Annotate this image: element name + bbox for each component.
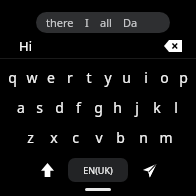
staticText: Da [123, 15, 138, 30]
staticText: w [26, 68, 38, 87]
button[interactable]: s [31, 92, 48, 122]
staticText: m [159, 128, 173, 147]
staticText: n [139, 128, 148, 147]
button[interactable]: q [4, 62, 21, 92]
button[interactable]: t [80, 62, 97, 92]
button[interactable]: e [42, 62, 59, 92]
staticText: Hi [19, 37, 32, 55]
staticText: u [122, 68, 131, 87]
staticText: q [8, 68, 17, 87]
button[interactable]: b [112, 122, 129, 152]
staticText: x [50, 128, 58, 147]
button[interactable]: Backspace [162, 35, 184, 57]
button[interactable]: i [137, 62, 154, 92]
button[interactable]: k [148, 92, 165, 122]
button[interactable]: c [67, 122, 84, 152]
staticText: h [113, 98, 122, 117]
button[interactable]: m [157, 122, 174, 152]
button[interactable]: p [175, 62, 192, 92]
button[interactable]: f [70, 92, 87, 122]
button[interactable]: n [135, 122, 152, 152]
button[interactable]: l [167, 92, 184, 122]
staticText: k [153, 98, 161, 117]
button[interactable]: v [90, 122, 107, 152]
staticText: a [17, 98, 25, 117]
button[interactable]: h [109, 92, 126, 122]
button[interactable]: u [118, 62, 135, 92]
staticText: EN(UK) [83, 164, 113, 176]
button[interactable]: z [22, 122, 39, 152]
button[interactable]: there [46, 15, 74, 30]
button[interactable]: Da [123, 15, 138, 30]
staticText: b [116, 128, 125, 147]
staticText: v [95, 128, 103, 147]
staticText: there [46, 15, 74, 30]
staticText: r [67, 68, 73, 87]
button[interactable]: I [85, 15, 89, 30]
staticText: c [72, 128, 79, 147]
staticText: t [86, 68, 92, 87]
button[interactable]: Send [136, 157, 162, 183]
staticText: j [135, 98, 139, 117]
staticText: d [55, 98, 64, 117]
button[interactable]: r [61, 62, 78, 92]
button[interactable]: Shift [34, 157, 60, 183]
button[interactable]: a [12, 92, 29, 122]
button[interactable]: j [128, 92, 145, 122]
button[interactable]: o [156, 62, 173, 92]
button[interactable]: EN(UK) [68, 158, 128, 182]
staticText: l [174, 98, 178, 117]
staticText: I [85, 15, 89, 30]
staticText: z [27, 128, 34, 147]
staticText: g [94, 98, 103, 117]
button[interactable]: g [90, 92, 107, 122]
staticText: p [179, 68, 188, 87]
staticText: i [144, 68, 148, 87]
staticText: e [47, 68, 55, 87]
staticText: s [36, 98, 43, 117]
staticText: all [100, 15, 112, 30]
button[interactable]: there [36, 12, 170, 33]
staticText: y [104, 68, 112, 87]
button[interactable]: w [23, 62, 40, 92]
staticText: o [160, 68, 169, 87]
staticText: f [76, 98, 81, 117]
button[interactable]: d [51, 92, 68, 122]
button[interactable]: y [99, 62, 116, 92]
button[interactable]: x [45, 122, 62, 152]
button[interactable]: all [100, 15, 112, 30]
